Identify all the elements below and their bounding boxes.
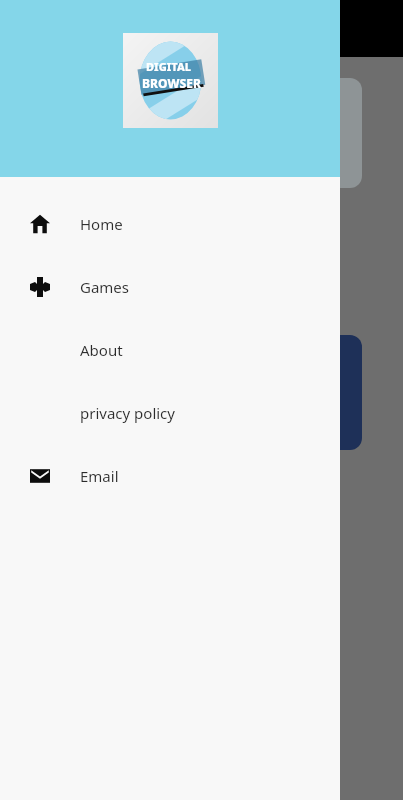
other: Email — [30, 466, 50, 486]
staticText: BROWSER — [142, 75, 201, 91]
other: Home — [30, 214, 50, 234]
staticText: privacy policy — [80, 403, 175, 423]
staticText: Home — [80, 214, 123, 234]
staticText: Email — [80, 466, 119, 486]
button[interactable]: Home — [0, 192, 340, 255]
other: Games — [30, 277, 50, 297]
staticText: DIGITAL — [146, 59, 191, 74]
button[interactable]: Email — [0, 444, 340, 507]
button[interactable]: Games — [0, 255, 340, 318]
button[interactable]: About — [0, 318, 340, 381]
staticText: Games — [80, 277, 130, 297]
button[interactable]: privacy policy — [0, 381, 340, 444]
staticText: About — [80, 340, 123, 360]
